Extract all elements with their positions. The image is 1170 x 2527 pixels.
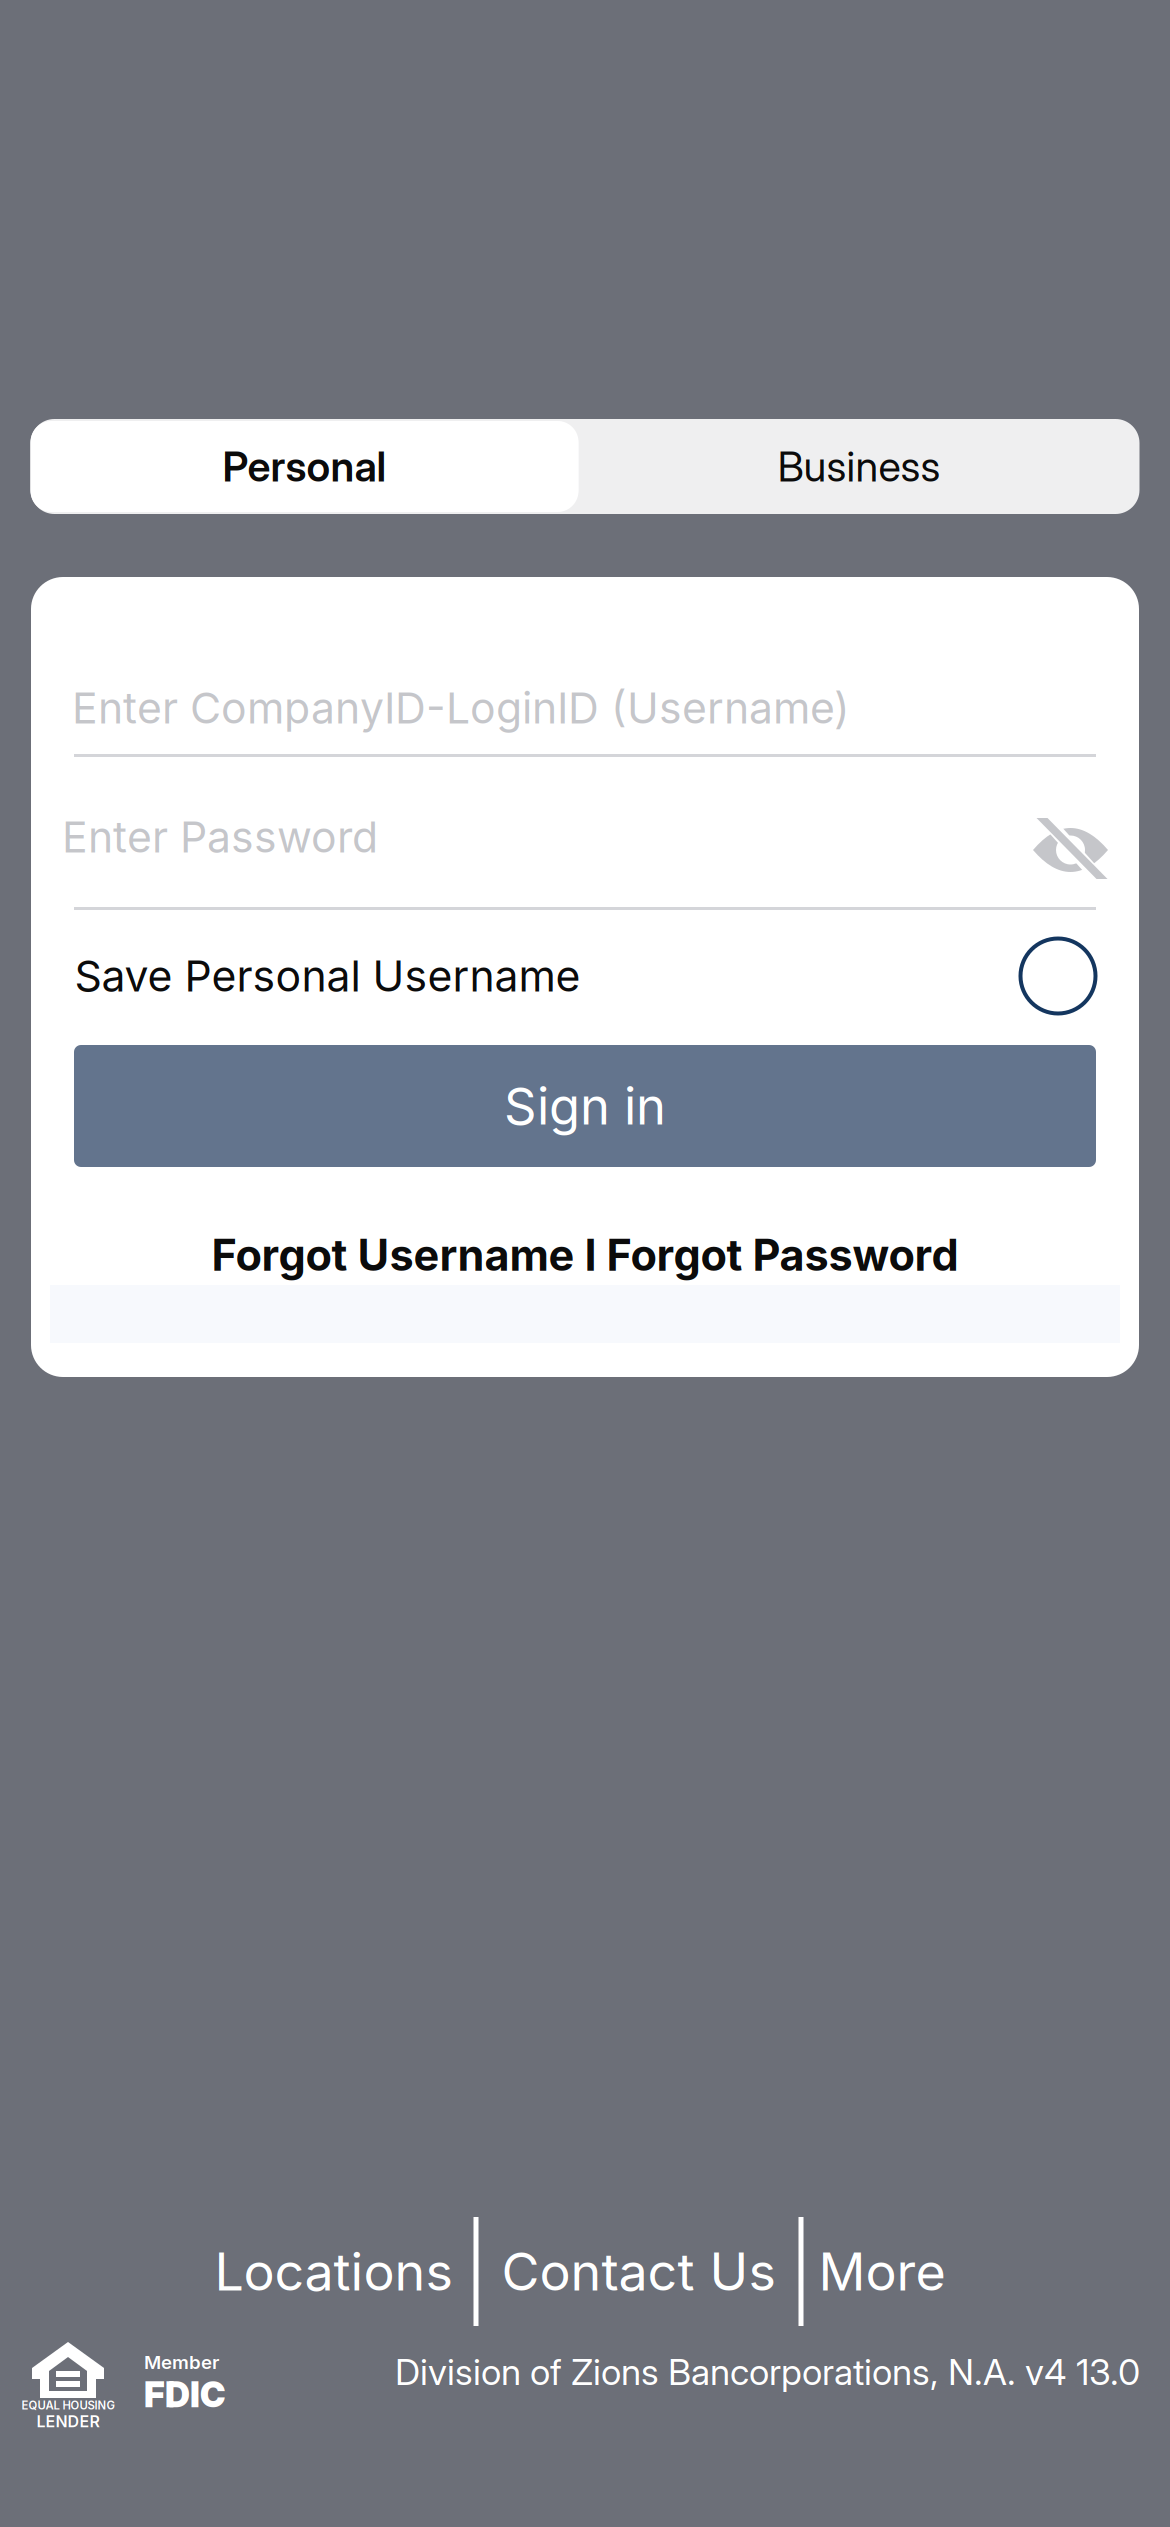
staticText: EQUAL HOUSING bbox=[21, 2399, 114, 2412]
staticText: More bbox=[818, 2240, 945, 2303]
button[interactable]: Sign in bbox=[74, 1045, 1096, 1167]
staticText: Locations bbox=[214, 2240, 452, 2303]
button[interactable]: Personal bbox=[30, 421, 578, 512]
button[interactable]: Business bbox=[578, 421, 1139, 512]
staticText: Enter Password bbox=[62, 811, 378, 863]
staticText: Enter CompanyID-LoginID (Username) bbox=[72, 682, 850, 734]
staticText: Sign in bbox=[504, 1075, 666, 1137]
staticText: FDIC bbox=[144, 2374, 225, 2415]
staticText: Division of Zions Bancorporations, N.A. … bbox=[395, 2350, 1140, 2394]
button[interactable]: Forgot Username I Forgot Password bbox=[74, 1230, 1096, 1280]
button[interactable]: Save Personal Username bbox=[74, 937, 1095, 1015]
button[interactable]: Locations bbox=[193, 2217, 473, 2326]
staticText: Member bbox=[144, 2351, 219, 2374]
button[interactable]: Contact Us bbox=[478, 2217, 798, 2326]
staticText: Personal bbox=[222, 441, 386, 491]
button[interactable]: Show password bbox=[1004, 809, 1108, 865]
staticText: Forgot Username I Forgot Password bbox=[211, 1229, 958, 1281]
staticText: LENDER bbox=[36, 2412, 99, 2431]
button[interactable]: More bbox=[803, 2217, 960, 2326]
staticText: Contact Us bbox=[501, 2240, 775, 2303]
staticText: Save Personal Username bbox=[74, 950, 580, 1002]
staticText: Business bbox=[777, 441, 940, 491]
